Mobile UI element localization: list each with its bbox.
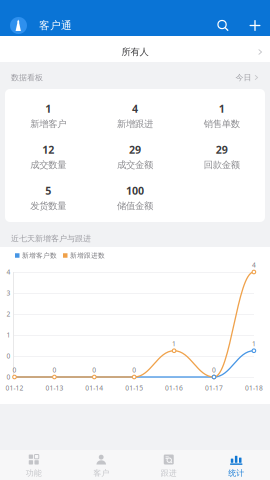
staticText: 回款金额 <box>204 159 240 171</box>
staticText: 所有人 <box>121 46 148 58</box>
staticText: 0 <box>132 366 136 374</box>
staticText: 成交金额 <box>117 159 153 171</box>
staticText: 储值金额 <box>117 200 153 212</box>
staticText: 01-14 <box>85 384 103 392</box>
staticText: 4 <box>7 268 11 276</box>
staticText: 01-18 <box>245 384 263 392</box>
button[interactable]: 今日 <box>236 73 258 82</box>
staticText: 1 <box>219 101 225 116</box>
staticText: 成交数量 <box>30 159 66 171</box>
staticText: 29 <box>216 142 228 157</box>
staticText: 01-15 <box>125 384 143 392</box>
staticText: 数据看板 <box>11 73 43 82</box>
staticText: 4 <box>252 261 256 269</box>
staticText: 0 <box>52 366 56 374</box>
staticText: 0 <box>212 366 216 374</box>
button[interactable]: 统计 <box>202 450 270 480</box>
staticText: 2 <box>7 310 11 318</box>
staticText: 3 <box>7 289 11 297</box>
staticText: 客户 <box>93 468 109 478</box>
staticText: 发货数量 <box>30 200 66 212</box>
button[interactable]: 所有人 <box>0 36 270 62</box>
staticText: 12 <box>42 142 54 157</box>
staticText: 统计 <box>228 468 244 478</box>
staticText: 0 <box>92 366 96 374</box>
staticText: 1 <box>252 339 256 348</box>
staticText: 4 <box>132 101 138 116</box>
staticText: 新增客户 <box>30 118 66 130</box>
staticText: 新增客户数 <box>22 251 57 260</box>
staticText: 29 <box>129 142 141 157</box>
staticText: 新增跟进 <box>117 118 153 130</box>
staticText: 1 <box>7 331 11 339</box>
staticText: 新增跟进数 <box>70 251 105 260</box>
staticText: 01-16 <box>165 384 183 392</box>
staticText: 01-12 <box>5 384 23 392</box>
staticText: 0 <box>7 373 11 381</box>
staticText: 01-17 <box>205 384 223 392</box>
staticText: 今日 <box>236 73 252 82</box>
button[interactable]: 搜索 <box>212 15 234 36</box>
button[interactable]: 跟进 <box>135 450 202 480</box>
staticText: 客户通 <box>39 19 72 32</box>
button[interactable]: 功能 <box>0 450 67 480</box>
button[interactable]: 新建 <box>244 15 266 36</box>
staticText: 0 <box>12 366 16 374</box>
staticText: 0 <box>7 352 11 360</box>
staticText: 1 <box>172 339 176 348</box>
staticText: 01-13 <box>45 384 63 392</box>
staticText: 1 <box>45 101 51 116</box>
staticText: 跟进 <box>161 468 177 478</box>
staticText: 功能 <box>26 468 42 478</box>
staticText: 100 <box>126 183 144 198</box>
staticText: 近七天新增客户与跟进 <box>11 234 91 243</box>
staticText: 5 <box>45 183 51 198</box>
button[interactable]: 客户 <box>67 450 135 480</box>
staticText: 销售单数 <box>204 118 240 130</box>
